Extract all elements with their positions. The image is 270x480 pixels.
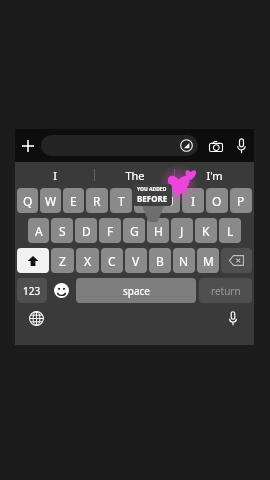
staticText: H bbox=[154, 223, 163, 239]
staticText: YOU ADDED bbox=[137, 186, 167, 193]
button[interactable]: Shift bbox=[17, 248, 49, 273]
staticText: Y bbox=[142, 193, 149, 209]
staticText: E bbox=[70, 193, 77, 209]
staticText: C bbox=[108, 253, 116, 269]
button[interactable]: The bbox=[95, 162, 174, 188]
button[interactable]: Emoji bbox=[50, 278, 73, 303]
button[interactable]: K bbox=[195, 218, 217, 243]
staticText: I'm bbox=[206, 168, 223, 183]
button[interactable]: C bbox=[101, 248, 123, 273]
button[interactable]: Add attachment bbox=[15, 133, 41, 159]
button[interactable]: 123 bbox=[17, 278, 47, 303]
button[interactable]: A bbox=[28, 218, 49, 243]
staticText: M bbox=[203, 253, 214, 269]
staticText: U bbox=[165, 193, 174, 209]
button[interactable]: U bbox=[158, 188, 180, 213]
staticText: I bbox=[53, 168, 57, 183]
button[interactable]: G bbox=[123, 218, 145, 243]
button[interactable]: E bbox=[63, 188, 84, 213]
button[interactable]: P bbox=[230, 188, 252, 213]
button[interactable]: N bbox=[173, 248, 195, 273]
button[interactable]: Z bbox=[51, 248, 74, 273]
staticText: Q bbox=[23, 193, 33, 209]
button[interactable]: return bbox=[199, 278, 252, 303]
button[interactable]: L bbox=[219, 218, 241, 243]
button[interactable]: J bbox=[171, 218, 193, 243]
button[interactable]: V bbox=[125, 248, 147, 273]
staticText: K bbox=[202, 223, 210, 239]
staticText: N bbox=[179, 253, 189, 269]
button[interactable]: R bbox=[86, 188, 108, 213]
staticText: B bbox=[156, 253, 164, 269]
staticText: X bbox=[84, 253, 92, 269]
staticText: The bbox=[125, 168, 145, 183]
staticText: D bbox=[82, 223, 91, 239]
button[interactable]: D bbox=[75, 218, 97, 243]
button[interactable]: Camera bbox=[205, 135, 227, 157]
button[interactable]: I bbox=[182, 188, 204, 213]
staticText: I bbox=[191, 193, 196, 209]
button[interactable]: W bbox=[40, 188, 61, 213]
button[interactable]: F bbox=[99, 218, 121, 243]
staticText: return bbox=[211, 284, 241, 298]
button[interactable]: I bbox=[15, 162, 94, 188]
button[interactable]: Backspace bbox=[221, 248, 252, 273]
staticText: R bbox=[93, 193, 101, 209]
button[interactable]: Stickers bbox=[180, 139, 193, 152]
button[interactable]: Q bbox=[17, 188, 38, 213]
button[interactable]: T bbox=[110, 188, 132, 213]
staticText: G bbox=[130, 223, 139, 239]
button[interactable]: Microphone bbox=[230, 135, 252, 157]
staticText: L bbox=[227, 223, 234, 239]
staticText: BEFORE bbox=[137, 193, 168, 204]
button[interactable]: X bbox=[76, 248, 99, 273]
staticText: O bbox=[212, 193, 222, 209]
staticText: space bbox=[123, 284, 150, 298]
button[interactable]: Y bbox=[134, 188, 156, 213]
staticText: S bbox=[59, 223, 66, 239]
button[interactable]: Stickers bbox=[41, 135, 198, 156]
staticText: F bbox=[107, 223, 114, 239]
staticText: T bbox=[118, 193, 125, 209]
staticText: W bbox=[45, 193, 57, 209]
staticText: 123 bbox=[23, 284, 41, 298]
button[interactable]: Change keyboard language bbox=[25, 307, 47, 329]
button[interactable]: S bbox=[51, 218, 73, 243]
button[interactable]: I'm bbox=[175, 162, 254, 188]
button[interactable]: M bbox=[197, 248, 219, 273]
button[interactable]: Dictation bbox=[222, 307, 244, 329]
staticText: V bbox=[132, 253, 140, 269]
staticText: P bbox=[237, 193, 245, 209]
button[interactable]: space bbox=[76, 278, 196, 303]
staticText: J bbox=[180, 223, 184, 239]
button[interactable]: H bbox=[147, 218, 169, 243]
staticText: Z bbox=[59, 253, 66, 269]
button[interactable]: B bbox=[149, 248, 171, 273]
button[interactable]: O bbox=[206, 188, 228, 213]
staticText: A bbox=[35, 223, 43, 239]
